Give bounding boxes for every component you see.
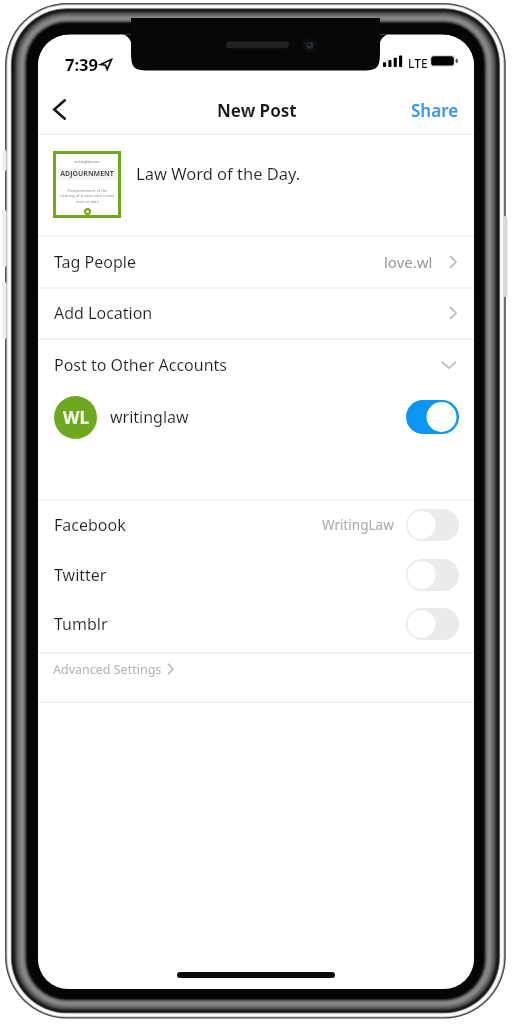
button[interactable]: Switch off [406, 509, 459, 541]
staticText: ADJOURNMENT [60, 169, 114, 179]
staticText: Post to Other Accounts [54, 354, 228, 376]
staticText: Twitter [54, 564, 107, 586]
button[interactable]: WL [38, 392, 474, 442]
staticText: Share [411, 99, 459, 122]
staticText: Postponement of the hearing of a case un… [60, 188, 115, 204]
staticText: Tag People [54, 251, 136, 273]
button[interactable]: Tumblr [38, 599, 474, 649]
button[interactable]: Facebook [38, 500, 474, 550]
button[interactable]: Back [38, 88, 84, 133]
button[interactable]: Switch on [406, 400, 459, 434]
staticText: Facebook [54, 514, 126, 536]
staticText: New Post [217, 99, 297, 122]
button[interactable]: Add Location [38, 288, 474, 338]
button[interactable]: Share [396, 89, 474, 132]
button[interactable]: Twitter [38, 550, 474, 599]
staticText: Advanced Settings [53, 661, 162, 678]
staticText: writinglaw [110, 406, 189, 428]
staticText: WritingLaw [322, 516, 394, 534]
button[interactable]: Switch off [406, 608, 459, 640]
staticText: Tumblr [54, 613, 108, 635]
button[interactable]: Advanced Settings [38, 653, 474, 685]
staticText: writinglaw.com [74, 159, 100, 164]
staticText: Add Location [54, 302, 153, 324]
staticText: Law Word of the Day. [136, 162, 301, 184]
staticText: WL [63, 406, 89, 429]
staticText: 7:39 [65, 53, 98, 75]
button[interactable]: Switch off [406, 559, 459, 591]
button[interactable]: Tag People [38, 237, 474, 287]
staticText: love.wl [384, 252, 433, 272]
staticText: LTE [408, 55, 428, 71]
button[interactable]: writinglaw.com [38, 134, 474, 236]
button[interactable]: Post to Other Accounts [38, 340, 474, 390]
